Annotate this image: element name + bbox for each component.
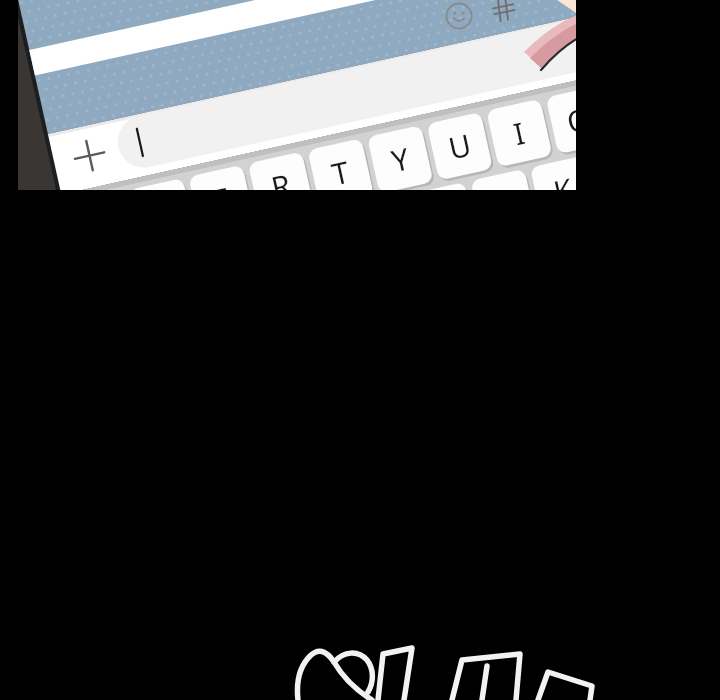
button[interactable]: Comic panel <box>0 0 720 700</box>
